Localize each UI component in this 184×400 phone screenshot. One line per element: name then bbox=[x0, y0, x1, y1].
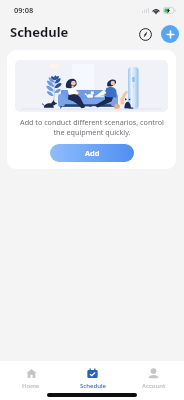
button[interactable]: Home bbox=[0, 368, 62, 390]
staticText: 09:08 bbox=[14, 5, 34, 15]
button[interactable]: Schedule bbox=[62, 368, 123, 390]
button[interactable]: Account bbox=[123, 368, 184, 390]
staticText: Add bbox=[85, 148, 100, 158]
staticText: Home bbox=[22, 382, 40, 390]
staticText: Add to conduct different scenarios, cont… bbox=[20, 117, 164, 137]
button[interactable]: Add schedule bbox=[161, 25, 179, 43]
button[interactable]: Add bbox=[50, 144, 134, 162]
button[interactable]: Explore bbox=[136, 25, 154, 43]
staticText: Schedule bbox=[10, 23, 69, 41]
staticText: Account bbox=[142, 382, 166, 390]
staticText: Schedule bbox=[80, 382, 106, 390]
